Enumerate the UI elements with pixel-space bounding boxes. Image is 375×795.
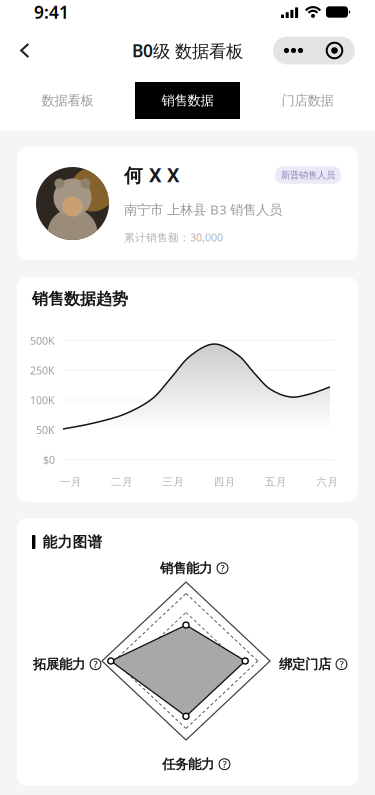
staticText: ? bbox=[220, 562, 224, 574]
button[interactable]: 数据看板 bbox=[0, 82, 135, 119]
staticText: ? bbox=[93, 658, 97, 670]
staticText: 南宁市 上林县 B3 销售人员 bbox=[124, 200, 282, 218]
staticText: 六月 bbox=[316, 475, 338, 488]
staticText: 新晋销售人员 bbox=[281, 169, 335, 181]
staticText: ? bbox=[222, 758, 226, 770]
button[interactable]: 销售数据 bbox=[135, 82, 240, 119]
button[interactable]: Back bbox=[11, 36, 39, 64]
staticText: 门店数据 bbox=[281, 92, 333, 109]
staticText: 100K bbox=[30, 393, 55, 407]
staticText: 一月 bbox=[60, 475, 82, 488]
staticText: 50K bbox=[36, 423, 55, 437]
staticText: 拓展能力 bbox=[33, 656, 85, 672]
staticText: 销售能力 bbox=[160, 560, 212, 576]
staticText: 9:41 bbox=[34, 0, 69, 23]
staticText: 三月 bbox=[162, 475, 184, 488]
staticText: $0 bbox=[43, 452, 55, 467]
staticText: 四月 bbox=[213, 475, 235, 488]
staticText: 能力图谱 bbox=[42, 533, 102, 551]
staticText: 500K bbox=[30, 333, 55, 348]
staticText: 销售数据趋势 bbox=[32, 289, 128, 309]
staticText: 绑定门店 bbox=[279, 656, 331, 672]
button[interactable]: More options bbox=[273, 36, 355, 64]
staticText: 何 X X bbox=[124, 163, 180, 187]
staticText: 二月 bbox=[111, 475, 133, 488]
staticText: 五月 bbox=[265, 475, 287, 488]
staticText: B0级 数据看板 bbox=[132, 39, 243, 62]
staticText: 250K bbox=[30, 363, 55, 377]
button[interactable]: 门店数据 bbox=[240, 82, 375, 119]
staticText: 累计销售额：30,000 bbox=[124, 230, 223, 244]
staticText: 销售数据 bbox=[161, 92, 213, 109]
staticText: ? bbox=[339, 658, 343, 670]
staticText: 任务能力 bbox=[162, 756, 214, 772]
staticText: 数据看板 bbox=[41, 92, 93, 109]
